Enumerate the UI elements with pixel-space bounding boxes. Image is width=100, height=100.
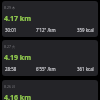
staticText: 7'12" /km: [36, 27, 56, 33]
staticText: 8.27 火: [4, 44, 16, 49]
staticText: 30:01: [5, 27, 17, 33]
button[interactable]: 8.29 木 run, 4.17 km: [2, 1, 98, 37]
staticText: 8.29 木: [4, 5, 16, 10]
button[interactable]: 8.26 月 run, 4.16 km: [2, 80, 98, 100]
staticText: 359 kcal: [77, 27, 94, 33]
staticText: 4.17 km: [4, 14, 31, 24]
button[interactable]: 8.27 火 run, 4.19 km: [2, 40, 98, 76]
staticText: 361 kcal: [77, 66, 94, 72]
staticText: 28:58: [5, 66, 17, 72]
staticText: 6'55" /km: [36, 66, 56, 72]
staticText: 4.16 km: [4, 93, 31, 100]
staticText: 4.19 km: [4, 53, 31, 63]
staticText: 8.26 月: [4, 84, 16, 89]
